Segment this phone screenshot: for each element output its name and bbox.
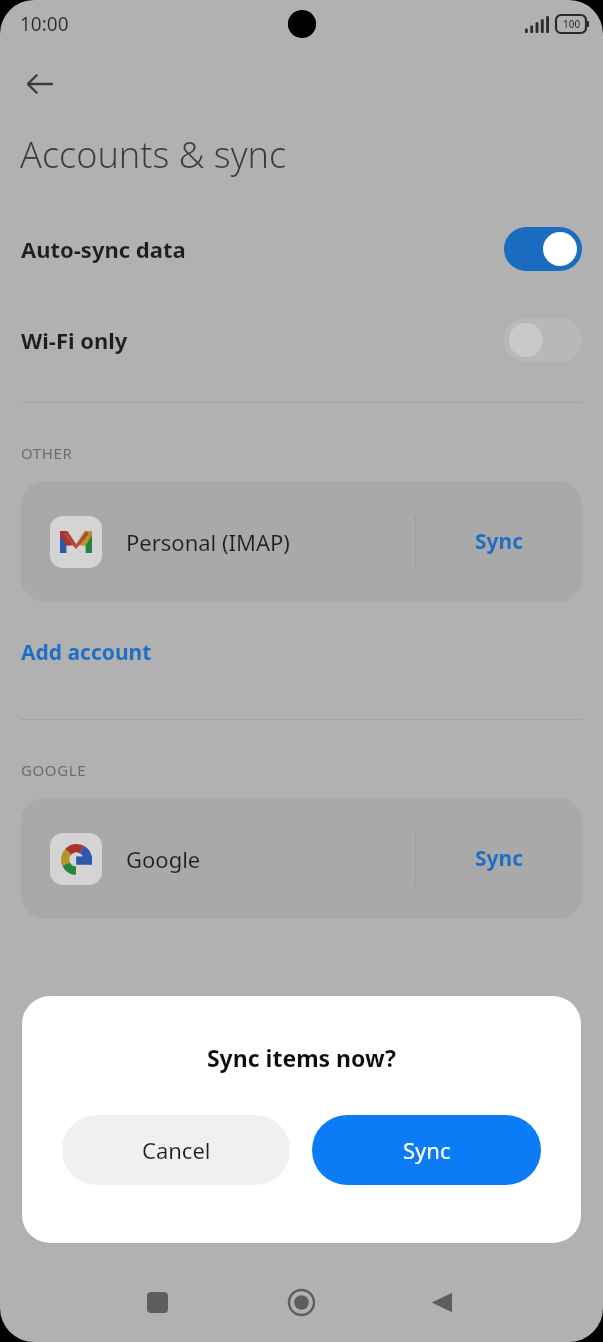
staticText: OTHER [21, 443, 73, 463]
button[interactable]: Google [21, 833, 415, 885]
staticText: Wi-Fi only [21, 325, 128, 355]
staticText: Sync [475, 844, 524, 873]
staticText: 10:00 [20, 11, 69, 37]
button[interactable]: Sync [312, 1115, 541, 1185]
staticText: Personal (IMAP) [126, 527, 290, 557]
button[interactable]: Back [415, 1276, 467, 1328]
staticText: Auto-sync data [21, 234, 186, 264]
button[interactable]: Auto-sync data [0, 227, 603, 271]
button[interactable]: Recent apps [131, 1276, 183, 1328]
button[interactable]: Sync [416, 798, 582, 919]
staticText: Cancel [142, 1135, 211, 1165]
staticText: Google [126, 844, 201, 874]
staticText: Sync [475, 527, 524, 556]
button[interactable]: Cancel [62, 1115, 290, 1185]
button[interactable]: Add account [8, 634, 165, 671]
staticText: Accounts & sync [20, 130, 287, 179]
staticText: GOOGLE [21, 760, 87, 780]
button[interactable]: Back [12, 56, 68, 112]
button[interactable]: Wi-Fi only [0, 318, 603, 362]
button[interactable]: Home [275, 1276, 327, 1328]
button[interactable]: Personal (IMAP) [21, 516, 415, 568]
staticText: 100 [563, 17, 581, 31]
staticText: Sync items now? [22, 1042, 581, 1073]
staticText: Sync [403, 1135, 451, 1165]
button[interactable]: Sync [416, 481, 582, 602]
